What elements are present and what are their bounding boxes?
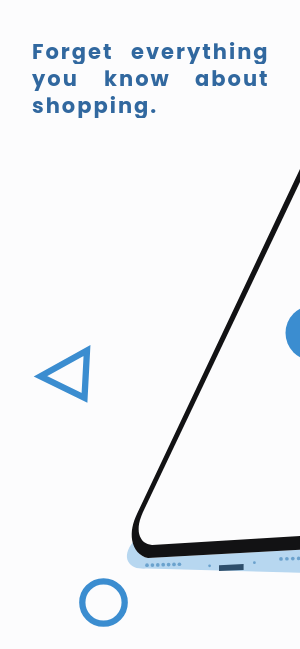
staticText: everything [131, 37, 270, 64]
staticText: you [32, 64, 79, 91]
button[interactable]: Forget [32, 37, 270, 118]
staticText: Forget [32, 37, 114, 64]
staticText: about [195, 64, 270, 91]
staticText: shopping. [32, 91, 159, 118]
staticText: know [104, 64, 171, 91]
